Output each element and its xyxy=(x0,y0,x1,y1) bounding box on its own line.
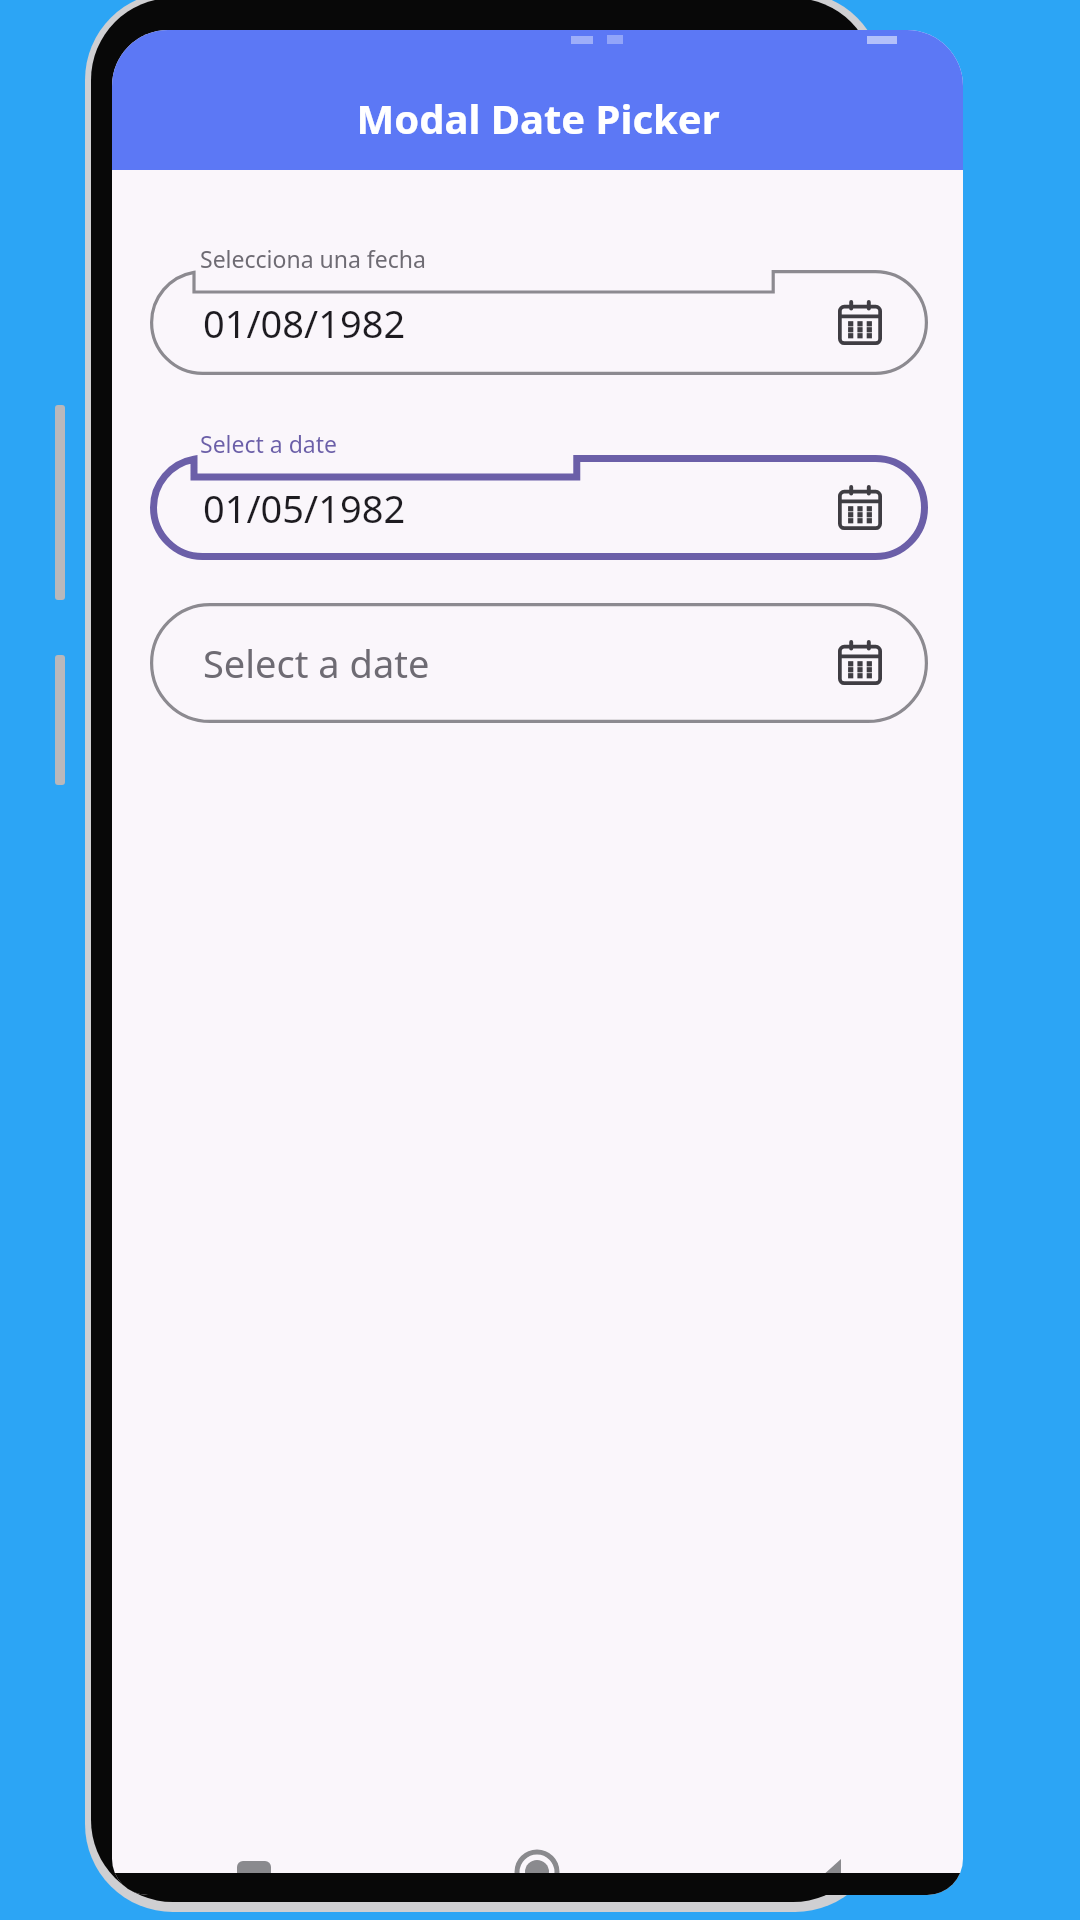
staticText: Select a date xyxy=(200,428,338,459)
staticText: Selecciona una fecha xyxy=(200,243,426,274)
button[interactable]: Back xyxy=(801,1859,841,1895)
button[interactable]: Home xyxy=(514,1849,560,1895)
button[interactable]: Selecciona una fecha xyxy=(150,243,928,375)
button[interactable]: Show date picker xyxy=(830,293,890,353)
staticText: Modal Date Picker xyxy=(356,91,720,145)
button[interactable]: Select a date xyxy=(150,428,928,560)
button[interactable]: Show date picker xyxy=(830,478,890,538)
button[interactable]: Recent apps xyxy=(237,1861,271,1895)
staticText: 01/08/1982 xyxy=(203,297,830,349)
button[interactable]: Select a date xyxy=(150,603,928,723)
staticText: 01/05/1982 xyxy=(203,482,830,534)
staticText: Select a date xyxy=(203,637,830,689)
button[interactable]: Show date picker xyxy=(830,633,890,693)
